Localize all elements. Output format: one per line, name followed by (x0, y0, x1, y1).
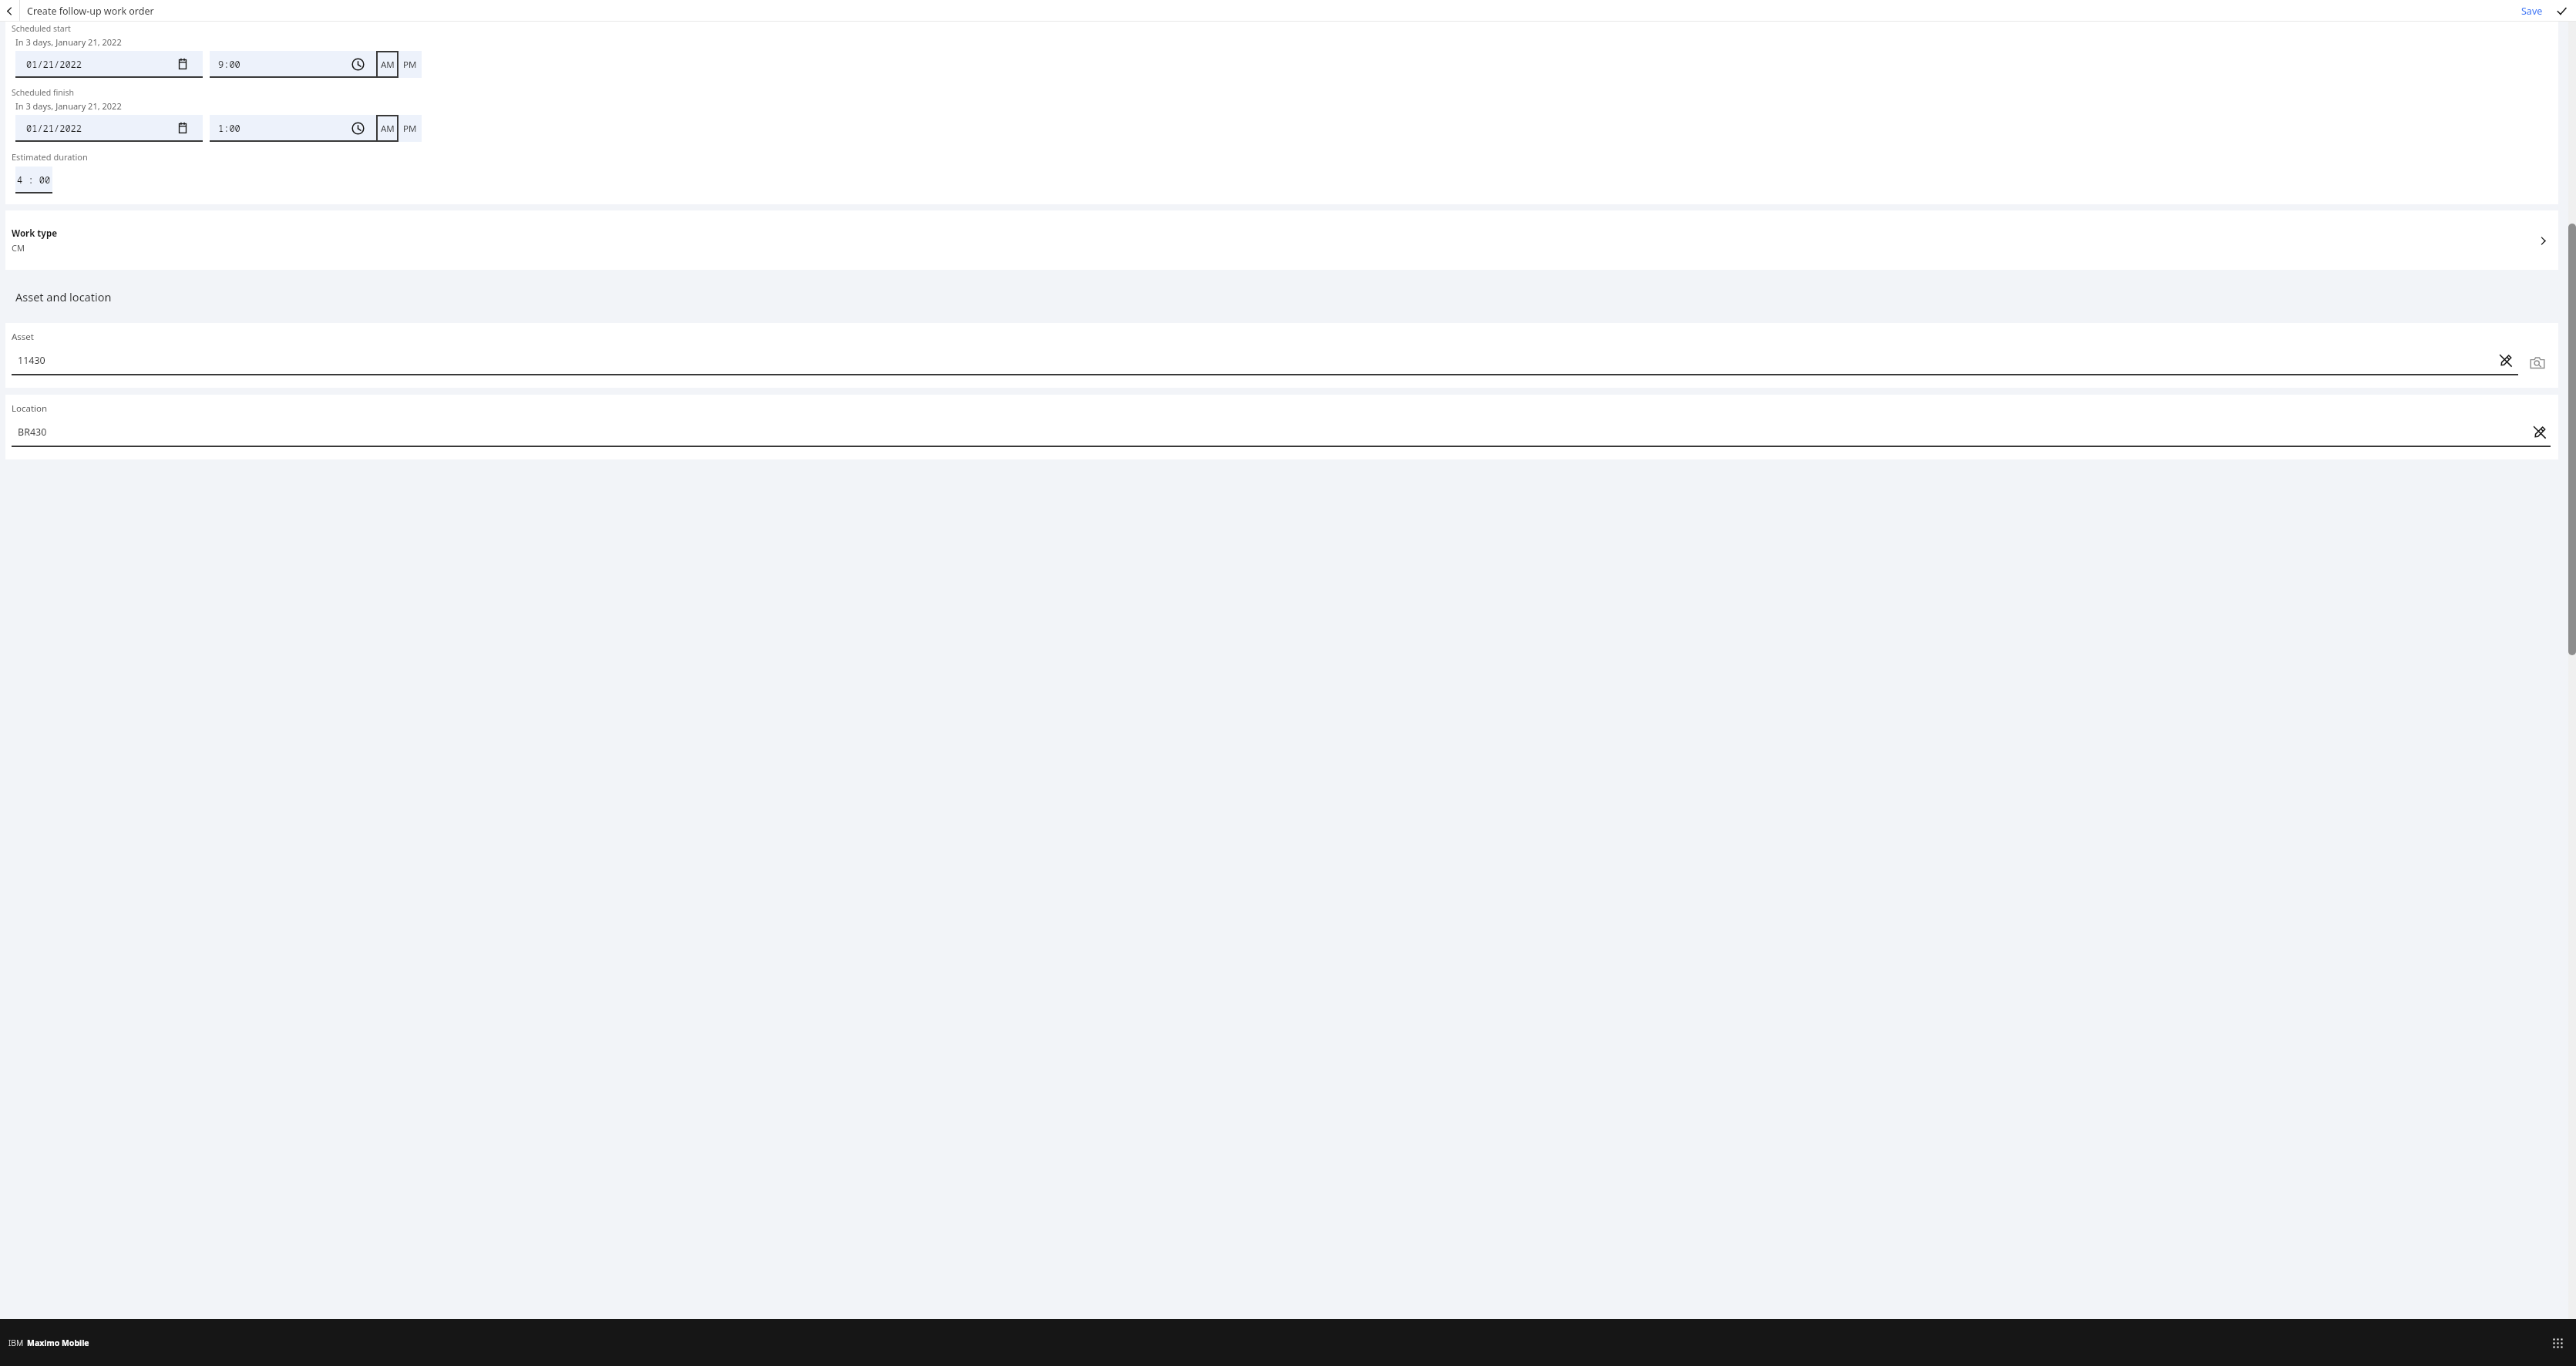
button[interactable]: 1:00 (210, 115, 376, 142)
staticText: Asset and location (15, 289, 112, 304)
staticText: 01/21/2022 (26, 58, 82, 70)
staticText: In 3 days, January 21, 2022 (15, 100, 122, 112)
staticText: Scheduled finish (12, 87, 75, 98)
button[interactable]: PM (399, 115, 422, 142)
staticText: 11430 (18, 354, 45, 367)
staticText: Maximo Mobile (27, 1337, 89, 1348)
staticText: Estimated duration (12, 151, 88, 163)
staticText: BR430 (18, 426, 47, 439)
staticText: Work type (12, 227, 58, 240)
staticText: Scheduled start (12, 23, 71, 34)
staticText: AM (381, 123, 395, 135)
button[interactable]: 11430 (12, 350, 2518, 375)
staticText: PM (403, 59, 417, 71)
staticText: AM (381, 59, 395, 71)
staticText: Save (2521, 5, 2543, 18)
button[interactable]: Back (0, 0, 19, 22)
button[interactable]: Scan asset (2526, 352, 2549, 375)
button[interactable]: AM (376, 115, 399, 142)
staticText: 01/21/2022 (26, 122, 82, 134)
button[interactable]: PM (399, 51, 422, 78)
staticText: Create follow-up work order (27, 5, 154, 18)
button[interactable]: App menu (2546, 1331, 2569, 1354)
button[interactable]: Save (2521, 2, 2576, 19)
other: Not editable (2529, 422, 2549, 442)
other: Not editable (2495, 350, 2515, 370)
staticText: Location (12, 402, 48, 415)
button[interactable]: AM (376, 51, 399, 78)
staticText: 9:00 (218, 58, 240, 70)
button[interactable]: 4 : 00 (15, 167, 52, 193)
staticText: In 3 days, January 21, 2022 (15, 36, 122, 48)
staticText: 1:00 (218, 122, 240, 134)
button[interactable]: 9:00 (210, 51, 376, 78)
button[interactable]: BR430 (12, 422, 2551, 447)
button[interactable]: 01/21/2022 (15, 51, 203, 78)
button[interactable]: 01/21/2022 (15, 115, 203, 142)
staticText: 4 : 00 (17, 173, 51, 186)
staticText: PM (403, 123, 417, 135)
staticText: CM (12, 242, 25, 254)
button[interactable]: Work type (5, 210, 2558, 270)
staticText: IBM (8, 1337, 24, 1348)
other: Confirm (2553, 2, 2570, 19)
staticText: Asset (12, 331, 35, 343)
